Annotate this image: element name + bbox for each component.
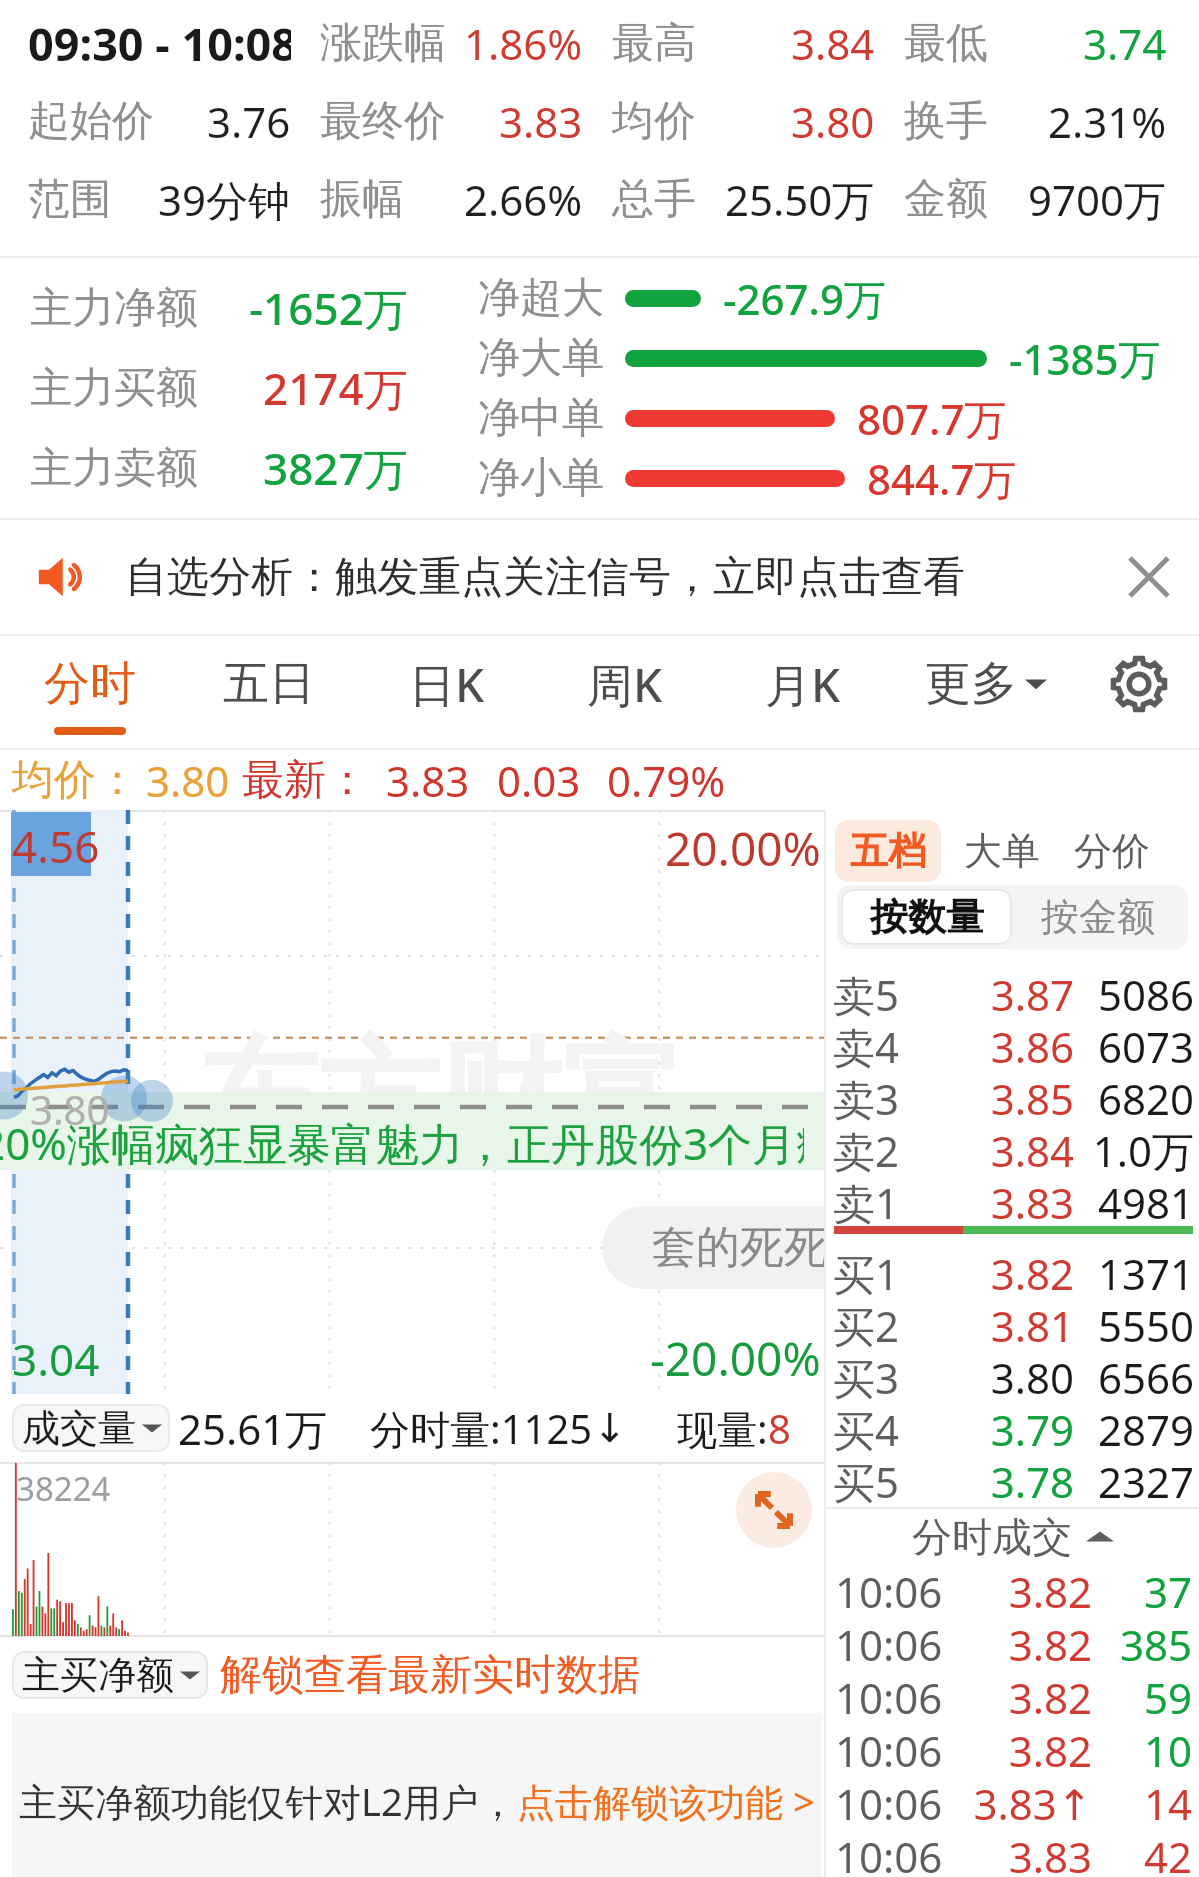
button[interactable]: 卖5 <box>833 966 1194 1018</box>
staticText: 10:06 <box>835 1828 943 1877</box>
button[interactable]: 10:06 <box>835 1828 1192 1877</box>
staticText: 净中单 <box>478 392 604 445</box>
button[interactable]: 关闭 <box>1118 546 1180 608</box>
button[interactable]: 20%涨幅疯狂显暴富魅力，正丹股份3个月疯狂翻 <box>0 1092 824 1170</box>
staticText: 五日 <box>223 655 315 713</box>
staticText: 均价 <box>612 95 696 148</box>
staticText: 主买净额 <box>22 1651 174 1699</box>
staticText: 3.80 <box>30 1082 110 1136</box>
button[interactable]: 按金额 <box>1012 889 1184 945</box>
staticText: 3.83 <box>499 93 583 150</box>
staticText: 10:06 <box>835 1669 943 1722</box>
staticText: 2.66% <box>464 171 583 228</box>
button[interactable]: 买1 <box>833 1245 1194 1297</box>
button[interactable]: 按数量 <box>841 889 1012 945</box>
button[interactable]: 分时成交 <box>826 1511 1199 1563</box>
button[interactable]: 10:06 <box>835 1616 1192 1669</box>
staticText: 均价： <box>12 754 138 807</box>
staticText: 1371 <box>1074 1245 1194 1297</box>
staticText: 3.84 <box>953 1122 1074 1174</box>
button[interactable]: 周K <box>536 636 714 748</box>
button[interactable]: 买3 <box>833 1349 1194 1401</box>
staticText: 买1 <box>833 1245 900 1297</box>
button[interactable]: 设置 <box>1079 636 1199 748</box>
button[interactable]: 自选分析：触发重点关注信号，立即点击查看 <box>0 520 1199 634</box>
button[interactable]: 五日 <box>179 636 358 748</box>
staticText: 按金额 <box>1041 893 1155 941</box>
staticText: 0.79% <box>607 752 726 809</box>
staticText: -1385万 <box>1009 330 1161 387</box>
button[interactable]: 买4 <box>833 1401 1194 1453</box>
staticText: -1652万 <box>249 278 408 338</box>
staticText: 3.04 <box>12 1329 100 1389</box>
staticText: 2.31% <box>1048 93 1167 150</box>
button[interactable]: 分时 <box>0 636 179 748</box>
button[interactable]: 大单 <box>961 820 1043 882</box>
button[interactable]: 日K <box>358 636 536 748</box>
button[interactable]: 月K <box>714 636 892 748</box>
staticText: 最低 <box>904 17 988 70</box>
staticText: 买2 <box>833 1297 900 1349</box>
staticText: 3.83↑ <box>965 1775 1092 1828</box>
staticText: 最高 <box>612 17 696 70</box>
staticText: 3.80 <box>791 93 875 150</box>
staticText: -20.00% <box>650 1327 821 1390</box>
staticText: 买4 <box>833 1401 900 1453</box>
staticText: 买5 <box>833 1453 900 1505</box>
staticText: 1.86% <box>464 15 583 72</box>
staticText: 分价 <box>1074 827 1150 875</box>
button[interactable]: 10:06 <box>835 1563 1192 1616</box>
staticText: 3.82 <box>965 1563 1092 1616</box>
button[interactable]: 卖4 <box>833 1018 1194 1070</box>
staticText: ↓ <box>593 1405 627 1452</box>
staticText: 3.86 <box>953 1018 1074 1070</box>
staticText: 3.83 <box>386 752 470 809</box>
staticText: 5086 <box>1074 966 1194 1018</box>
staticText: 20.00% <box>665 817 821 880</box>
button[interactable]: 主买净额 <box>12 1651 208 1699</box>
staticText: 6073 <box>1074 1018 1194 1070</box>
staticText: 59 <box>1092 1669 1192 1722</box>
button[interactable]: 买2 <box>833 1297 1194 1349</box>
staticText: 主力卖额 <box>30 442 198 495</box>
button[interactable]: 10:06 <box>835 1722 1192 1775</box>
staticText: 3.80 <box>953 1349 1074 1401</box>
staticText: 净小单 <box>478 452 604 505</box>
staticText: 振幅 <box>320 173 404 226</box>
button[interactable]: 全屏 <box>736 1472 812 1548</box>
staticText: 9700万 <box>1028 171 1167 228</box>
button[interactable]: 卖1 <box>833 1174 1194 1226</box>
staticText: 3.76 <box>207 93 291 150</box>
staticText: 3.79 <box>953 1401 1074 1453</box>
button[interactable]: 买5 <box>833 1453 1194 1505</box>
staticText: 38224 <box>16 1466 111 1511</box>
button[interactable]: 分价 <box>1071 820 1153 882</box>
button[interactable]: 10:06 <box>835 1775 1192 1828</box>
staticText: 套的死死的赚 <box>652 1220 916 1275</box>
staticText: 按数量 <box>870 893 984 941</box>
staticText: 自选分析：触发重点关注信号，立即点击查看 <box>125 551 965 604</box>
staticText: 3.82 <box>965 1616 1092 1669</box>
staticText: 买3 <box>833 1349 900 1401</box>
staticText: 分时量:1125 <box>370 1401 593 1456</box>
staticText: 卖2 <box>833 1122 900 1174</box>
button[interactable]: 套的死死的赚 <box>602 1206 936 1289</box>
staticText: 点击解锁该功能 > <box>517 1775 815 1827</box>
staticText: 844.7万 <box>867 450 1017 507</box>
button[interactable]: 10:06 <box>835 1669 1192 1722</box>
staticText: 净超大 <box>478 272 604 325</box>
staticText: 3.82 <box>965 1722 1092 1775</box>
button[interactable]: 卖2 <box>833 1122 1194 1174</box>
staticText: 3.80 <box>146 752 230 809</box>
staticText: 现量: <box>677 1401 768 1456</box>
button[interactable]: 成交量 <box>12 1404 170 1452</box>
button[interactable]: 五档 <box>835 820 941 882</box>
button[interactable]: 更多 <box>892 636 1079 748</box>
staticText: 385 <box>1092 1616 1192 1669</box>
staticText: 2879 <box>1074 1401 1194 1453</box>
staticText: 周K <box>587 653 663 716</box>
button[interactable]: 卖3 <box>833 1070 1194 1122</box>
staticText: 卖3 <box>833 1070 900 1122</box>
staticText: 总手 <box>612 173 696 226</box>
staticText: 3.78 <box>953 1453 1074 1505</box>
